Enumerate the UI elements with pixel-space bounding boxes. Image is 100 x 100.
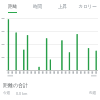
- staticText: 距離: [8, 4, 17, 10]
- staticText: 上昇: [58, 4, 67, 10]
- staticText: カロリー: [78, 4, 97, 10]
- button[interactable]: 上昇: [50, 0, 75, 16]
- button[interactable]: カロリー: [75, 0, 100, 16]
- staticText: 時間: [33, 4, 42, 10]
- button[interactable]: 今週: [3, 91, 97, 96]
- staticText: 今週: [3, 91, 11, 96]
- button[interactable]: 距離: [0, 0, 25, 16]
- button[interactable]: 距離の合計: [3, 82, 29, 88]
- button[interactable]: 時間: [25, 0, 50, 16]
- staticText: 0.0 km: [16, 91, 28, 96]
- staticText: 先週: [89, 91, 97, 96]
